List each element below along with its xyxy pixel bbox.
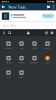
button[interactable]: Send — [45, 3, 51, 10]
button[interactable]: Topic Title — [0, 22, 56, 29]
button[interactable]: Text format — [1, 29, 7, 36]
button[interactable]: File Vault — [2, 52, 15, 67]
staticText: File Vault — [6, 62, 11, 64]
button[interactable]: Settings — [15, 67, 28, 81]
staticText: Cloud — [45, 62, 49, 64]
button[interactable]: Back — [0, 3, 7, 10]
staticText: Language — [4, 47, 12, 49]
button[interactable]: Public — [42, 14, 54, 19]
button[interactable]: Text Book — [15, 52, 28, 67]
button[interactable]: Language — [2, 38, 15, 52]
staticText: Notes — [19, 47, 23, 49]
button[interactable]: Cloud — [41, 52, 54, 67]
staticText: Locate — [6, 76, 11, 78]
button[interactable]: Settings — [44, 29, 49, 36]
button[interactable]: Attach — [49, 29, 55, 36]
button[interactable]: Locate — [2, 67, 15, 81]
staticText: Settings — [19, 76, 24, 78]
button[interactable]: Periodic — [28, 38, 41, 52]
button[interactable]: Bookmarks — [28, 52, 41, 67]
button[interactable]: Legend — [41, 38, 54, 52]
staticText: Topic Title — [2, 24, 16, 27]
staticText: Periodic — [31, 47, 37, 49]
staticText: Bookmarks — [30, 62, 39, 64]
staticText: Text Book — [18, 62, 25, 64]
button[interactable]: Camera — [25, 29, 31, 36]
staticText: Public — [44, 14, 53, 18]
button[interactable]: More options — [51, 3, 56, 10]
staticText: New Topic — [8, 4, 26, 9]
button[interactable]: Search — [7, 29, 13, 36]
staticText: Legend — [44, 47, 50, 49]
button[interactable]: Notes — [15, 38, 28, 52]
